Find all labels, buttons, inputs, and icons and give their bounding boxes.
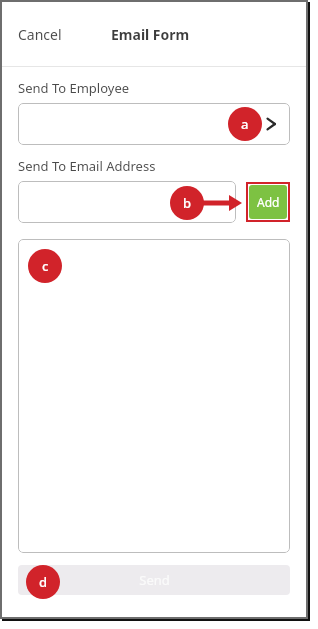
staticText: Add: [257, 194, 280, 210]
button[interactable]: Send: [18, 565, 290, 595]
button[interactable]: Message body: [18, 239, 290, 553]
button[interactable]: Add: [249, 185, 287, 219]
button[interactable]: Cancel: [18, 25, 62, 44]
staticText: c: [42, 257, 49, 275]
button[interactable]: Email address input: [18, 181, 236, 223]
staticText: a: [241, 115, 249, 133]
button[interactable]: Select employee: [18, 103, 290, 145]
staticText: d: [39, 573, 48, 591]
staticText: b: [183, 194, 192, 212]
staticText: Send To Employee: [18, 79, 130, 97]
staticText: Send: [139, 571, 170, 589]
staticText: Send To Email Address: [18, 157, 156, 175]
staticText: Email Form: [111, 25, 190, 44]
